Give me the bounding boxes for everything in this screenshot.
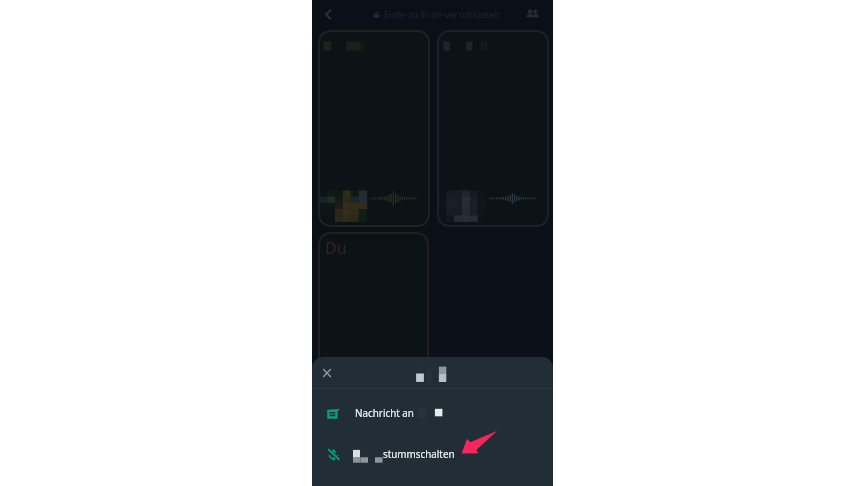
button[interactable]: Nachricht an: [312, 395, 553, 435]
staticText: Nachricht an: [355, 406, 414, 419]
button[interactable]: Schließen: [316, 362, 338, 384]
button[interactable]: [437, 30, 549, 227]
button[interactable]: [318, 30, 430, 227]
button[interactable]: stummschalten: [312, 437, 553, 477]
staticText: Ende-zu-Ende-verschlüsselt: [384, 8, 500, 20]
button[interactable]: Teilnehmer hinzufügen: [521, 3, 543, 25]
button[interactable]: Zurück: [317, 3, 339, 25]
staticText: stummschalten: [383, 447, 455, 460]
staticText: Du: [325, 237, 347, 259]
button[interactable]: Du: [318, 232, 429, 378]
